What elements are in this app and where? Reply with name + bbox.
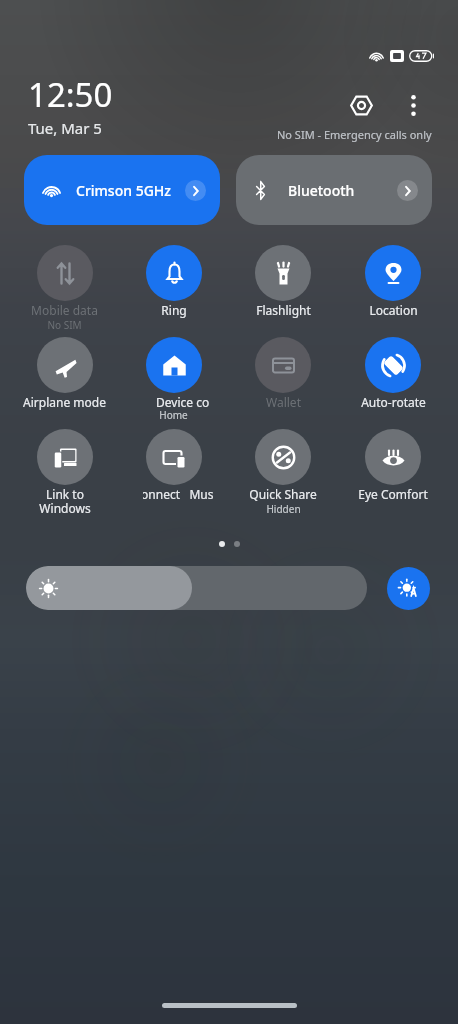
button[interactable]: Link to Windows [10, 429, 119, 521]
staticText: Mobile data [31, 302, 98, 318]
button[interactable]: Airplane mode [10, 337, 119, 429]
button[interactable]: Eye Comfort [338, 429, 448, 521]
button[interactable]: Crimson 5GHz [24, 155, 220, 225]
staticText: Wallet [266, 394, 301, 410]
button[interactable]: Wallet [228, 337, 338, 429]
button[interactable]: More options [391, 83, 435, 127]
button[interactable]: Auto brightness [387, 567, 430, 610]
staticText: Hidden [266, 502, 301, 516]
staticText: 12:50 [28, 72, 113, 117]
button[interactable]: Auto-rotate [338, 337, 448, 429]
staticText: Location [369, 302, 418, 318]
button[interactable]: Brightness [26, 566, 367, 610]
staticText: Tue, Mar 5 [28, 118, 102, 138]
staticText: Airplane mode [23, 394, 106, 410]
staticText: Smart View connect Music [143, 486, 213, 500]
staticText: No SIM [47, 318, 82, 332]
staticText: Home [159, 408, 188, 422]
staticText: Bluetooth [288, 181, 397, 200]
staticText: Crimson 5GHz [76, 181, 185, 200]
staticText: Ring [161, 302, 187, 318]
staticText: Quick Share [249, 486, 317, 502]
button[interactable]: Bluetooth [236, 155, 432, 225]
button[interactable]: Settings [339, 83, 383, 127]
staticText: No SIM - Emergency calls only [277, 127, 432, 142]
button[interactable]: Location [338, 245, 448, 337]
button[interactable]: Ring [119, 245, 228, 337]
staticText: Link to Windows [39, 486, 91, 517]
staticText: Flashlight [256, 302, 311, 318]
button[interactable]: Mobile data [10, 245, 119, 337]
staticText: Eye Comfort [358, 486, 428, 502]
staticText: Auto-rotate [361, 394, 426, 410]
button[interactable]: Flashlight [228, 245, 338, 337]
button[interactable]: Smart View connect Music [119, 429, 228, 521]
button[interactable]: Device control [119, 337, 228, 429]
button[interactable]: Quick Share [228, 429, 338, 521]
staticText: Device control [157, 394, 210, 408]
